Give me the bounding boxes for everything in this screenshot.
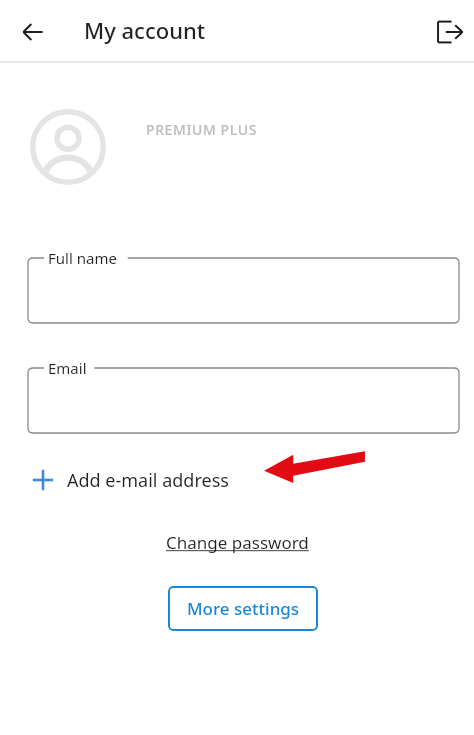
staticText: Email (48, 358, 87, 378)
staticText: Full name (48, 248, 117, 268)
button[interactable]: Add e-mail address (26, 461, 229, 499)
staticText: Add e-mail address (67, 468, 229, 493)
staticText: More settings (187, 597, 300, 620)
staticText: My account (84, 15, 206, 45)
button[interactable]: Change password (160, 527, 315, 558)
button[interactable]: Back (10, 9, 56, 55)
button[interactable]: Email (28, 368, 459, 433)
button[interactable]: More settings (168, 586, 318, 631)
button[interactable]: Full name (28, 258, 459, 323)
staticText: Change password (166, 531, 309, 554)
button[interactable]: Sign out (437, 10, 474, 54)
staticText: PREMIUM PLUS (146, 120, 257, 139)
